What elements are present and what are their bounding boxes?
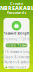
staticText: Upper & lowercase [4, 55, 30, 59]
staticText: Password Strength [3, 32, 29, 35]
staticText: UNBREAKABLE [0, 4, 33, 12]
button[interactable]: Generate Password [5, 43, 27, 47]
staticText: 16 characters long [5, 50, 30, 54]
staticText: Create [10, 1, 23, 6]
staticText: Never reused [8, 66, 26, 69]
staticText: Generate Password [2, 44, 30, 47]
staticText: Very strong • 128 bit [1, 37, 31, 41]
staticText: Passwords [6, 10, 26, 15]
staticText: Numbers & symbols [4, 60, 30, 64]
